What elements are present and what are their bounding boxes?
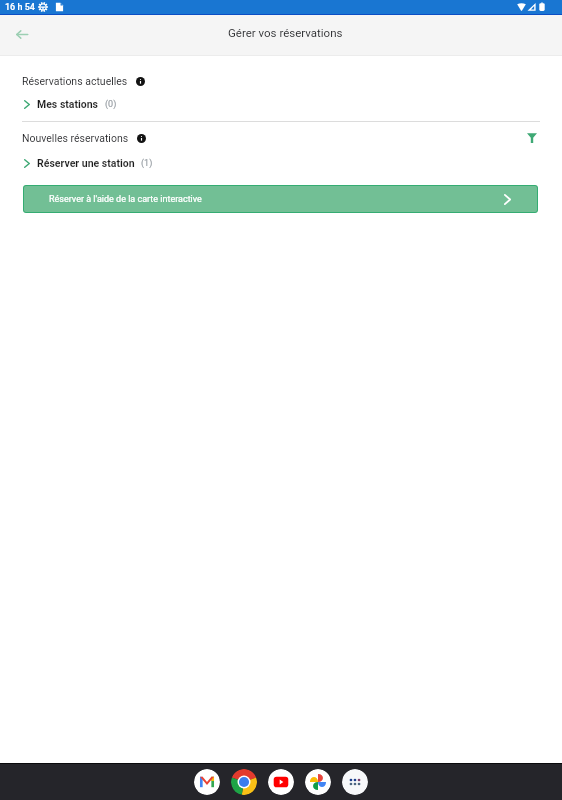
button[interactable]: Info xyxy=(135,132,147,144)
staticText: Mes stations xyxy=(37,98,99,110)
staticText: (1) xyxy=(141,158,153,169)
staticText: Réservations actuelles xyxy=(22,75,128,87)
staticText: Nouvelles réservations xyxy=(22,132,129,144)
button[interactable]: Gmail xyxy=(194,769,220,795)
staticText: Réserver une station xyxy=(37,157,135,169)
button[interactable]: Mes stations xyxy=(0,98,562,110)
button[interactable]: Réserver à l'aide de la carte interactiv… xyxy=(23,185,538,213)
staticText: 16 h 54 xyxy=(5,2,35,13)
staticText: Réserver à l'aide de la carte interactiv… xyxy=(49,194,202,205)
button[interactable]: YouTube xyxy=(268,769,294,795)
button[interactable]: Chrome xyxy=(231,769,257,795)
button[interactable]: Info xyxy=(134,75,146,87)
button[interactable]: Back xyxy=(6,18,38,50)
button[interactable]: All apps xyxy=(342,769,368,795)
staticText: (0) xyxy=(105,99,117,110)
button[interactable]: Réserver une station xyxy=(0,157,562,169)
button[interactable]: Photos xyxy=(305,769,331,795)
button[interactable]: Filter xyxy=(522,130,542,145)
staticText: Gérer vos réservations xyxy=(228,26,343,39)
